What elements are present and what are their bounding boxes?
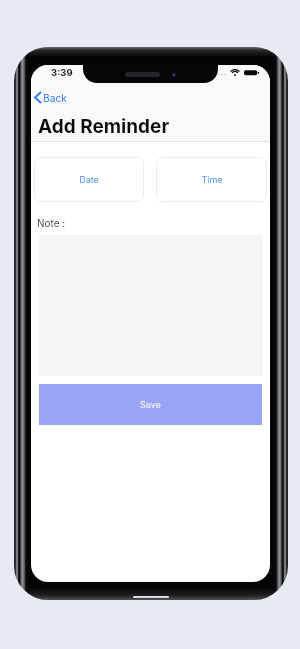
button[interactable]: Back xyxy=(32,88,69,107)
staticText: Back xyxy=(43,92,67,104)
staticText: Save xyxy=(140,399,161,410)
other: Wi-Fi xyxy=(230,68,240,76)
staticText: Note : xyxy=(37,217,66,229)
staticText: Date xyxy=(79,174,99,185)
button[interactable]: Date xyxy=(34,157,144,202)
staticText: 3:39 xyxy=(51,67,73,78)
staticText: Add Reminder xyxy=(38,115,170,138)
other: Cellular signal xyxy=(215,68,226,76)
button[interactable]: Save xyxy=(39,384,262,425)
staticText: Time xyxy=(201,174,223,185)
button[interactable]: Time xyxy=(156,157,267,202)
other: Battery xyxy=(244,68,259,76)
